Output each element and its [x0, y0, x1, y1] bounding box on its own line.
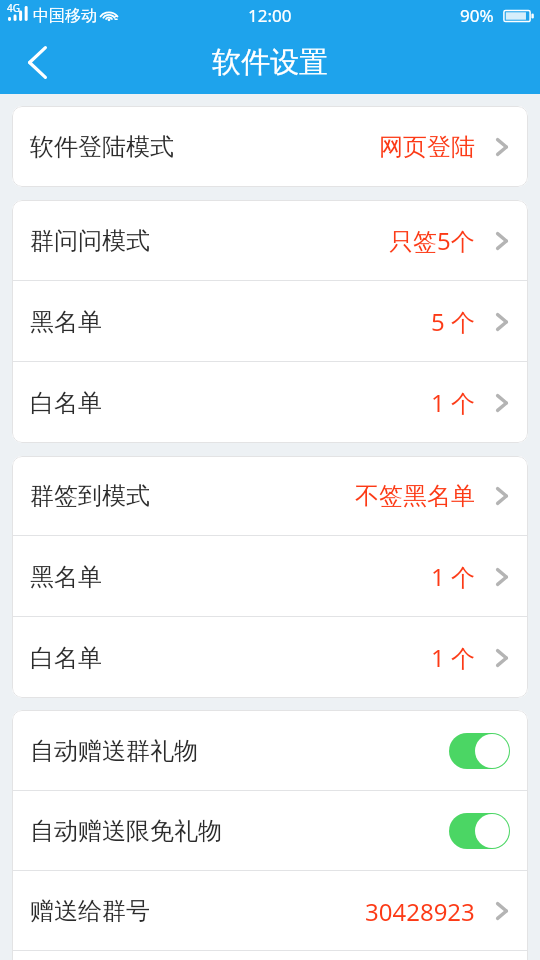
staticText: 黑名单 — [30, 307, 102, 337]
staticText: 软件登陆模式 — [30, 132, 174, 162]
button[interactable]: 黑名单 — [12, 536, 528, 617]
staticText: 白名单 — [30, 388, 102, 418]
button[interactable]: 自动赠送群礼物 — [12, 710, 528, 791]
staticText: 5 个 — [431, 305, 475, 338]
staticText: 4G — [7, 1, 20, 15]
staticText: 只签5个 — [389, 224, 475, 257]
staticText: 网页登陆 — [379, 132, 475, 162]
staticText: 不签黑名单 — [355, 481, 475, 511]
staticText: 1 个 — [431, 560, 475, 593]
button[interactable]: 白名单 — [12, 617, 528, 698]
button[interactable]: 群签到模式 — [12, 456, 528, 536]
staticText: 群问问模式 — [30, 226, 150, 256]
staticText: 赠送给群号 — [30, 896, 150, 926]
button[interactable]: 赠送给群号 — [12, 871, 528, 951]
staticText: 自动赠送群礼物 — [30, 736, 198, 766]
staticText: 1 个 — [431, 386, 475, 419]
staticText: 自动赠送限免礼物 — [30, 816, 222, 846]
staticText: 白名单 — [30, 643, 102, 673]
button[interactable]: 自动赠送限免礼物 — [12, 791, 528, 871]
staticText: 中国移动 — [33, 6, 97, 26]
button[interactable]: 自动赠送限免礼物 开关 — [449, 813, 510, 849]
button[interactable]: 软件登陆模式 — [12, 106, 528, 187]
button[interactable]: 黑名单 — [12, 281, 528, 362]
button[interactable]: Back — [0, 30, 74, 94]
staticText: 1 个 — [431, 641, 475, 674]
button[interactable]: 自动赠送群礼物 开关 — [449, 733, 510, 769]
button[interactable]: 白名单 — [12, 362, 528, 443]
staticText: 黑名单 — [30, 562, 102, 592]
staticText: 90% — [460, 4, 494, 27]
staticText: 30428923 — [365, 895, 475, 928]
staticText: 12:00 — [248, 4, 292, 27]
staticText: 群签到模式 — [30, 481, 150, 511]
button[interactable]: 群问问模式 — [12, 200, 528, 281]
staticText: 软件设置 — [212, 44, 328, 81]
